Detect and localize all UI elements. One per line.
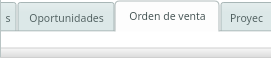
staticText: Orden de venta [129, 9, 206, 23]
staticText: s [5, 11, 11, 25]
button[interactable]: Oportunidades [18, 3, 114, 32]
staticText: Proyec [230, 11, 263, 25]
button[interactable]: Proyec [221, 3, 271, 32]
staticText: Oportunidades [29, 11, 104, 25]
button[interactable]: Orden de venta [115, 1, 219, 31]
button[interactable]: Pestaña anterior [0, 3, 16, 32]
